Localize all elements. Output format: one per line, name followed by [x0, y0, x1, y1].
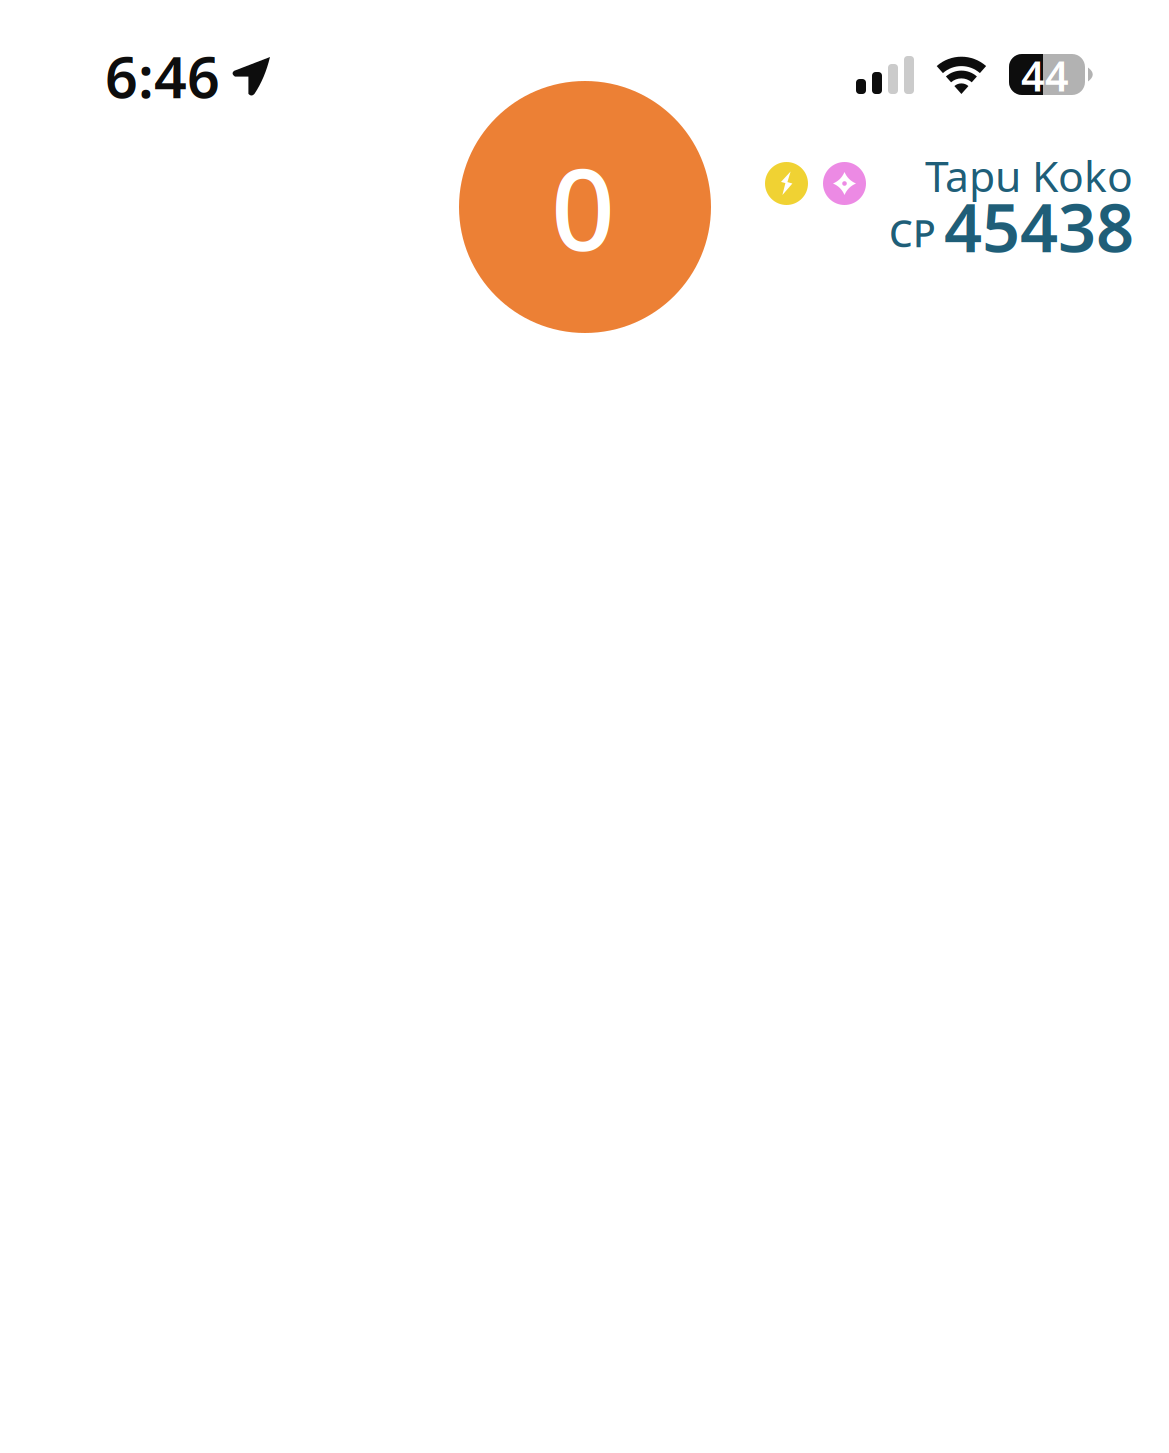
button[interactable]: Candy count [459, 81, 711, 333]
button[interactable]: Tapu Koko [889, 139, 1134, 247]
staticText: CP [889, 208, 936, 258]
button[interactable]: Electric type [765, 162, 808, 205]
staticText: 44 [1021, 48, 1069, 103]
staticText: 45438 [944, 182, 1134, 270]
button[interactable]: Fairy type [823, 162, 866, 205]
staticText: 0 [551, 133, 615, 282]
staticText: 6:46 [105, 38, 220, 114]
staticText: Tapu Koko [925, 147, 1133, 204]
